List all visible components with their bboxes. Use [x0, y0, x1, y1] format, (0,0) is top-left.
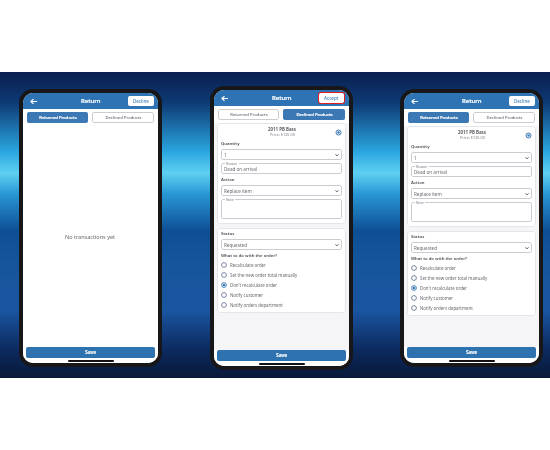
staticText: Set the new order total manually [230, 272, 298, 278]
button[interactable]: Selected product [524, 131, 532, 139]
staticText: Price: $125.00 [270, 132, 295, 137]
staticText: Save [276, 352, 288, 359]
button[interactable]: 1 [411, 152, 532, 163]
staticText: What to do with the order? [411, 256, 468, 262]
button[interactable]: Back [408, 95, 420, 107]
staticText: Notify customer [420, 295, 454, 301]
button[interactable]: Recalculate order [221, 260, 342, 270]
staticText: Replace item [224, 188, 252, 194]
button[interactable]: Decline [509, 96, 535, 106]
staticText: Return [272, 94, 292, 102]
staticText: Dead on arrival [414, 169, 448, 175]
button[interactable]: Accept [319, 93, 344, 103]
button[interactable]: Save [26, 347, 155, 358]
button[interactable]: Dead on arrival [221, 163, 342, 174]
button[interactable]: Declined Products [473, 112, 535, 123]
staticText: Status [411, 234, 425, 240]
button[interactable]: Dead on arrival [411, 166, 532, 177]
staticText: Replace item [414, 191, 442, 197]
staticText: Save [466, 349, 478, 356]
button[interactable]: Set the new order total manually [411, 273, 532, 283]
button[interactable]: Returned Products [218, 109, 279, 120]
staticText: Declined Products [486, 115, 523, 121]
staticText: No transactions yet [65, 233, 116, 240]
staticText: Save [85, 349, 97, 356]
staticText: Notify orders department [420, 305, 473, 311]
staticText: Action [221, 177, 235, 183]
staticText: Status [221, 231, 235, 237]
staticText: 1 [224, 152, 227, 158]
staticText: Decline [514, 98, 530, 104]
staticText: Declined Products [296, 112, 333, 118]
button[interactable]: Declined Products [283, 109, 345, 120]
staticText: Recalculate order [230, 262, 266, 268]
staticText: Quantity [411, 144, 430, 150]
staticText: Don't recalculate order [420, 285, 468, 291]
button[interactable]: Notify customer [411, 293, 532, 303]
staticText: What to do with the order? [221, 253, 278, 259]
button[interactable]: Back [218, 92, 230, 104]
button[interactable]: Declined Products [92, 112, 154, 123]
button[interactable]: Returned Products [408, 112, 469, 123]
staticText: 2011 PB Bass [268, 126, 296, 132]
staticText: Note [226, 197, 234, 201]
staticText: Notify orders department [230, 302, 283, 308]
button[interactable]: Recalculate order [411, 263, 532, 273]
staticText: Note [416, 200, 424, 204]
button[interactable]: Back [27, 95, 39, 107]
staticText: Declined Products [105, 115, 142, 121]
staticText: Don't recalculate order [230, 282, 278, 288]
staticText: Notify customer [230, 292, 264, 298]
staticText: Quantity [221, 141, 240, 147]
staticText: Action [411, 180, 425, 186]
staticText: Price: $125.00 [460, 135, 485, 140]
button[interactable] [411, 202, 532, 222]
staticText: Reason [416, 164, 428, 168]
button[interactable]: Requested [221, 239, 342, 250]
button[interactable]: Notify orders department [411, 303, 532, 313]
staticText: Reason [226, 161, 238, 165]
button[interactable]: Replace item [411, 188, 532, 199]
button[interactable]: Notify customer [221, 290, 342, 300]
button[interactable]: Don't recalculate order [411, 283, 532, 293]
staticText: 2011 PB Bass [458, 129, 486, 135]
staticText: Requested [224, 242, 247, 248]
staticText: Requested [414, 245, 437, 251]
button[interactable]: Don't recalculate order [221, 280, 342, 290]
button[interactable]: Returned Products [27, 112, 88, 123]
staticText: Decline [133, 98, 149, 104]
button[interactable] [221, 199, 342, 219]
staticText: Accept [324, 95, 339, 101]
staticText: 1 [414, 155, 417, 161]
staticText: Set the new order total manually [420, 275, 488, 281]
button[interactable]: Set the new order total manually [221, 270, 342, 280]
button[interactable]: Selected product [334, 128, 342, 136]
button[interactable]: Save [407, 347, 536, 358]
button[interactable]: Replace item [221, 185, 342, 196]
staticText: Returned Products [39, 115, 77, 121]
staticText: Return [81, 97, 101, 105]
staticText: Dead on arrival [224, 166, 258, 172]
staticText: Returned Products [230, 112, 268, 118]
staticText: Recalculate order [420, 265, 456, 271]
button[interactable]: Requested [411, 242, 532, 253]
button[interactable]: Save [217, 350, 346, 361]
button[interactable]: Decline [128, 96, 154, 106]
button[interactable]: Notify orders department [221, 300, 342, 310]
staticText: Return [462, 97, 482, 105]
staticText: Returned Products [420, 115, 458, 121]
button[interactable]: 1 [221, 149, 342, 160]
